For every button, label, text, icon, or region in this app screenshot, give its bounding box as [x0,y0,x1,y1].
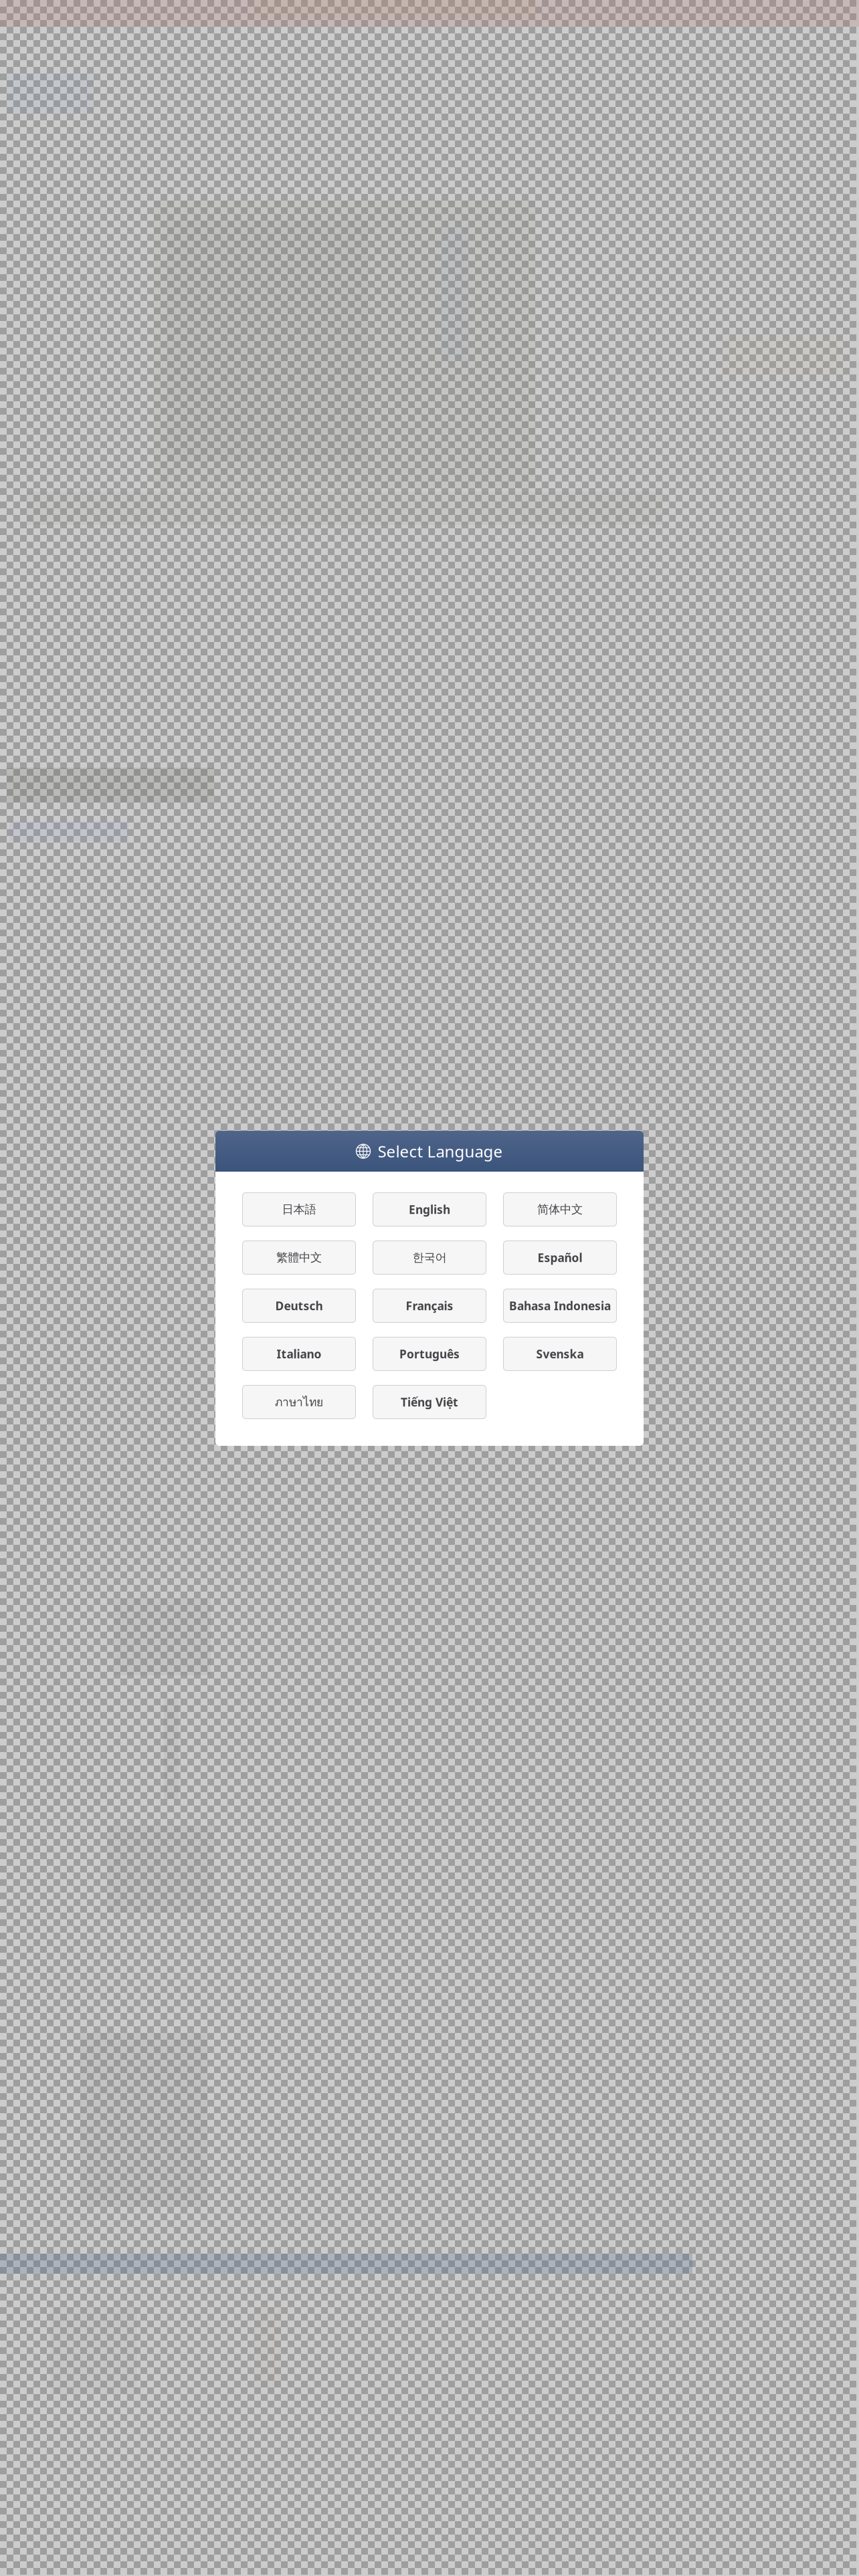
button[interactable]: Bahasa Indonesia [503,1289,616,1322]
button[interactable]: English [373,1193,486,1226]
staticText: 简体中文 [537,1202,583,1217]
staticText: Bahasa Indonesia [509,1298,611,1313]
staticText: Español [538,1250,582,1265]
staticText: ภาษาไทย [275,1393,323,1411]
staticText: 繁體中文 [276,1250,322,1265]
button[interactable]: Português [373,1337,486,1371]
staticText: Italiano [277,1346,321,1362]
staticText: Tiếng Việt [401,1394,458,1410]
button[interactable]: Español [503,1241,616,1274]
button[interactable]: 繁體中文 [243,1241,356,1274]
staticText: Svenska [536,1346,584,1362]
staticText: 한국어 [412,1250,447,1265]
button[interactable]: Italiano [243,1337,356,1371]
button[interactable]: 日本語 [243,1193,356,1226]
button[interactable]: Svenska [503,1337,616,1371]
staticText: Deutsch [275,1298,323,1313]
button[interactable]: Tiếng Việt [373,1385,486,1419]
staticText: Français [406,1298,453,1313]
button[interactable]: 한국어 [373,1241,486,1274]
button[interactable]: Français [373,1289,486,1322]
staticText: Select Language [378,1141,503,1162]
button[interactable]: Deutsch [243,1289,356,1322]
staticText: Português [399,1346,460,1362]
button[interactable]: 简体中文 [503,1193,616,1226]
staticText: English [409,1202,450,1217]
button[interactable]: ภาษาไทย [243,1385,356,1419]
staticText: 日本語 [282,1202,316,1217]
